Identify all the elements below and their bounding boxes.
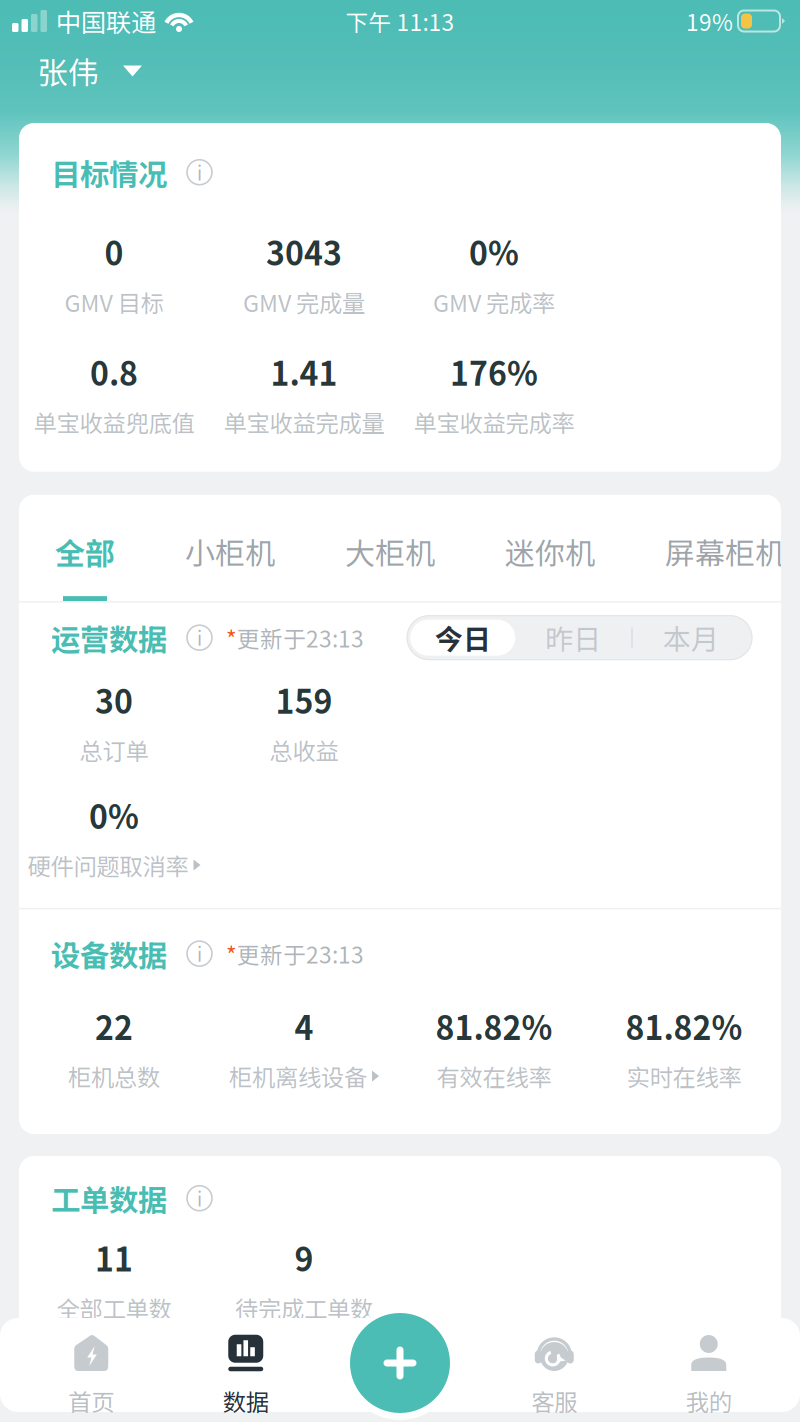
- staticText: 0.8: [90, 349, 138, 395]
- staticText: 更新于23:13: [237, 937, 364, 970]
- button[interactable]: 张伟: [37, 39, 142, 103]
- staticText: 我的: [686, 1384, 732, 1418]
- button[interactable]: 客服: [477, 1335, 631, 1418]
- staticText: 迷你机: [505, 530, 595, 573]
- staticText: 客服: [531, 1384, 577, 1418]
- staticText: 81.82%: [435, 1003, 552, 1049]
- staticText: 4: [294, 1003, 313, 1049]
- staticText: 柜机离线设备: [229, 1059, 367, 1093]
- staticText: 待完成工单数: [235, 1291, 373, 1325]
- staticText: 0%: [469, 228, 519, 275]
- staticText: 176%: [450, 349, 538, 395]
- staticText: 下午 11:13: [345, 5, 454, 37]
- staticText: i: [197, 624, 202, 651]
- button[interactable]: 昨日: [515, 620, 631, 656]
- staticText: GMV 完成量: [243, 285, 365, 319]
- staticText: 更新于23:13: [237, 621, 364, 654]
- staticText: 全部: [55, 530, 115, 573]
- button[interactable]: 本月: [633, 620, 749, 656]
- staticText: 0%: [89, 792, 139, 838]
- staticText: 本月: [663, 617, 719, 658]
- staticText: 目标情况: [51, 151, 167, 193]
- staticText: 3043: [266, 228, 342, 275]
- staticText: GMV 目标: [64, 285, 163, 319]
- staticText: 全部工单数: [56, 1291, 171, 1325]
- staticText: 柜机总数: [68, 1059, 160, 1093]
- staticText: 工单数据: [51, 1177, 167, 1219]
- staticText: 单宝收益完成率: [413, 405, 574, 439]
- button[interactable]: 小柜机: [185, 530, 275, 601]
- button[interactable]: 首页: [14, 1335, 168, 1418]
- staticText: 昨日: [545, 617, 601, 658]
- staticText: 总收益: [269, 733, 338, 767]
- staticText: *: [226, 621, 237, 654]
- button[interactable]: 迷你机: [505, 530, 595, 601]
- staticText: *: [226, 937, 237, 970]
- staticText: 首页: [68, 1384, 114, 1418]
- staticText: 实时在线率: [626, 1059, 741, 1093]
- staticText: 9: [294, 1234, 313, 1281]
- staticText: i: [197, 159, 202, 186]
- button[interactable]: 屏幕柜机: [665, 530, 785, 601]
- button[interactable]: 大柜机: [345, 530, 435, 601]
- staticText: 30: [95, 677, 133, 723]
- staticText: 81.82%: [625, 1003, 742, 1049]
- staticText: 大柜机: [345, 530, 435, 573]
- staticText: i: [197, 940, 202, 967]
- staticText: 159: [275, 677, 332, 723]
- button[interactable]: 添加: [343, 1306, 457, 1420]
- staticText: 22: [95, 1003, 133, 1049]
- staticText: 屏幕柜机: [665, 530, 785, 573]
- button[interactable]: 我的: [631, 1335, 786, 1418]
- staticText: 运营数据: [51, 616, 167, 659]
- staticText: 设备数据: [51, 932, 167, 975]
- staticText: 张伟: [37, 49, 99, 93]
- staticText: 单宝收益兜底值: [33, 405, 194, 439]
- staticText: GMV 完成率: [433, 285, 555, 319]
- button[interactable]: 全部: [55, 530, 115, 601]
- staticText: i: [197, 1185, 202, 1212]
- staticText: 小柜机: [185, 530, 275, 573]
- staticText: 1.41: [270, 349, 337, 395]
- staticText: 今日: [435, 617, 491, 658]
- staticText: 数据: [223, 1384, 269, 1418]
- button[interactable]: 今日: [410, 620, 515, 656]
- staticText: 总订单: [79, 733, 148, 767]
- staticText: 中国联通: [56, 3, 156, 39]
- button[interactable]: 数据: [168, 1335, 323, 1418]
- staticText: 19%: [686, 5, 733, 37]
- staticText: 单宝收益完成量: [223, 405, 384, 439]
- staticText: 0: [104, 228, 123, 275]
- staticText: 硬件问题取消率: [27, 848, 188, 882]
- staticText: 11: [95, 1234, 133, 1281]
- staticText: 有效在线率: [436, 1059, 551, 1093]
